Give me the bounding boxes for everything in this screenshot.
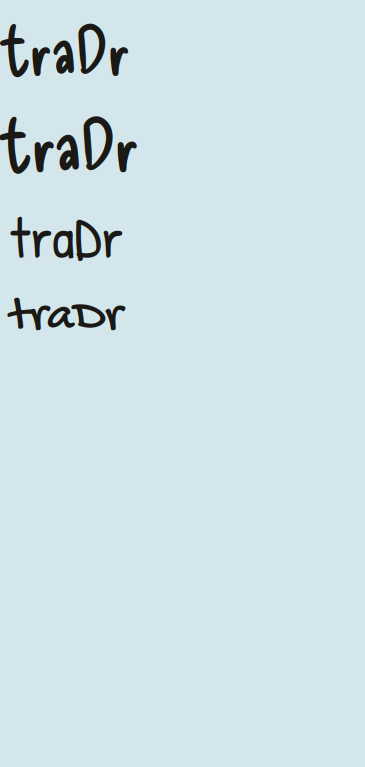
staticText: traDr: [10, 101, 139, 184]
staticText: traDr: [10, 290, 122, 346]
staticText: traDr: [10, 10, 130, 87]
staticText: traDr: [10, 198, 123, 276]
